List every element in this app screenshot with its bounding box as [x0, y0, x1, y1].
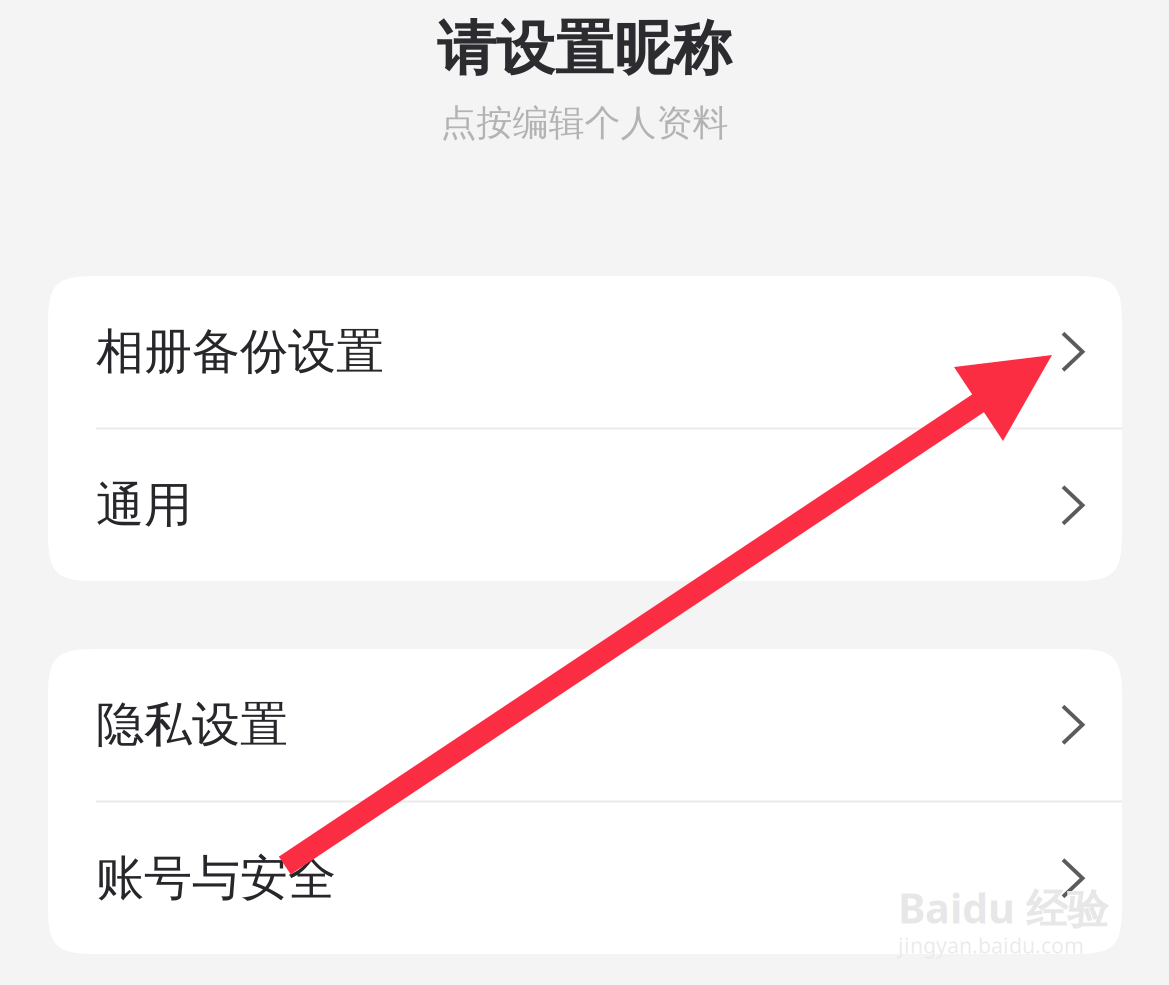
staticText: jingyan.baidu.com: [898, 931, 1084, 959]
staticText: 通用: [96, 476, 192, 535]
button[interactable]: 账号与安全: [48, 802, 1122, 954]
button[interactable]: 隐私设置: [48, 649, 1122, 800]
button[interactable]: 通用: [48, 429, 1122, 581]
staticText: 相册备份设置: [96, 322, 384, 381]
staticText: 请设置昵称: [437, 13, 732, 85]
staticText: 隐私设置: [96, 695, 288, 754]
staticText: 账号与安全: [96, 849, 336, 908]
staticText: 点按编辑个人资料: [440, 101, 728, 145]
staticText: Baidu 经验: [898, 880, 1108, 935]
button[interactable]: 相册备份设置: [48, 276, 1122, 427]
